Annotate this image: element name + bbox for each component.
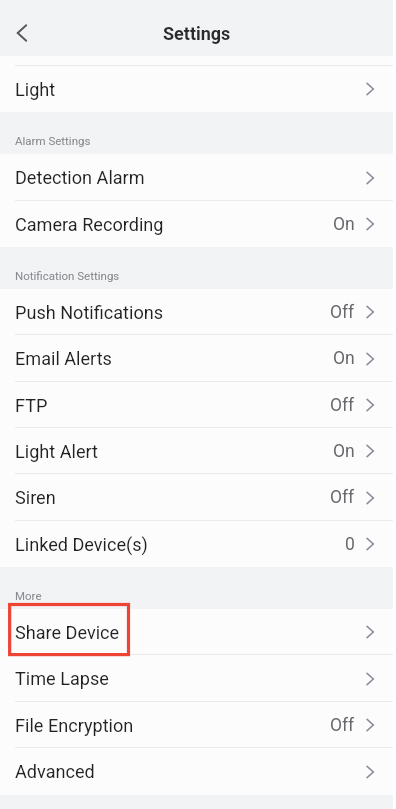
button[interactable]: Advanced [0, 748, 393, 795]
staticText: Share Device [15, 622, 120, 643]
staticText: Off [330, 395, 355, 416]
staticText: Detection Alarm [15, 167, 145, 188]
staticText: 0 [345, 534, 355, 555]
staticText: Push Notifications [15, 302, 164, 323]
staticText: Camera Recording [15, 214, 164, 235]
staticText: Email Alerts [15, 348, 112, 369]
staticText: Settings [163, 23, 231, 44]
staticText: FTP [15, 395, 48, 416]
button[interactable]: Detection Alarm [0, 154, 393, 201]
staticText: Light Alert [15, 441, 98, 462]
staticText: Off [330, 302, 355, 323]
staticText: Linked Device(s) [15, 534, 148, 555]
button[interactable]: Back [2, 13, 42, 53]
staticText: More [15, 589, 42, 602]
staticText: Light [15, 79, 56, 100]
staticText: Siren [15, 487, 56, 508]
button[interactable]: Light [0, 66, 393, 112]
staticText: Off [330, 487, 355, 508]
button[interactable]: Email Alerts [0, 335, 393, 382]
staticText: Alarm Settings [15, 134, 91, 147]
staticText: Advanced [15, 761, 95, 782]
staticText: On [333, 214, 355, 235]
button[interactable]: Push Notifications [0, 289, 393, 335]
button[interactable]: Siren [0, 474, 393, 521]
staticText: File Encryption [15, 715, 134, 736]
staticText: Notification Settings [15, 269, 120, 282]
button[interactable]: FTP [0, 382, 393, 428]
button[interactable]: Time Lapse [0, 655, 393, 702]
button[interactable]: Camera Recording [0, 201, 393, 247]
staticText: On [333, 348, 355, 369]
button[interactable]: Linked Device(s) [0, 521, 393, 567]
button[interactable]: Share Device [0, 609, 393, 655]
staticText: Time Lapse [15, 668, 109, 689]
staticText: On [333, 441, 355, 462]
button[interactable]: Light Alert [0, 428, 393, 474]
button[interactable]: File Encryption [0, 702, 393, 748]
staticText: Off [330, 715, 355, 736]
